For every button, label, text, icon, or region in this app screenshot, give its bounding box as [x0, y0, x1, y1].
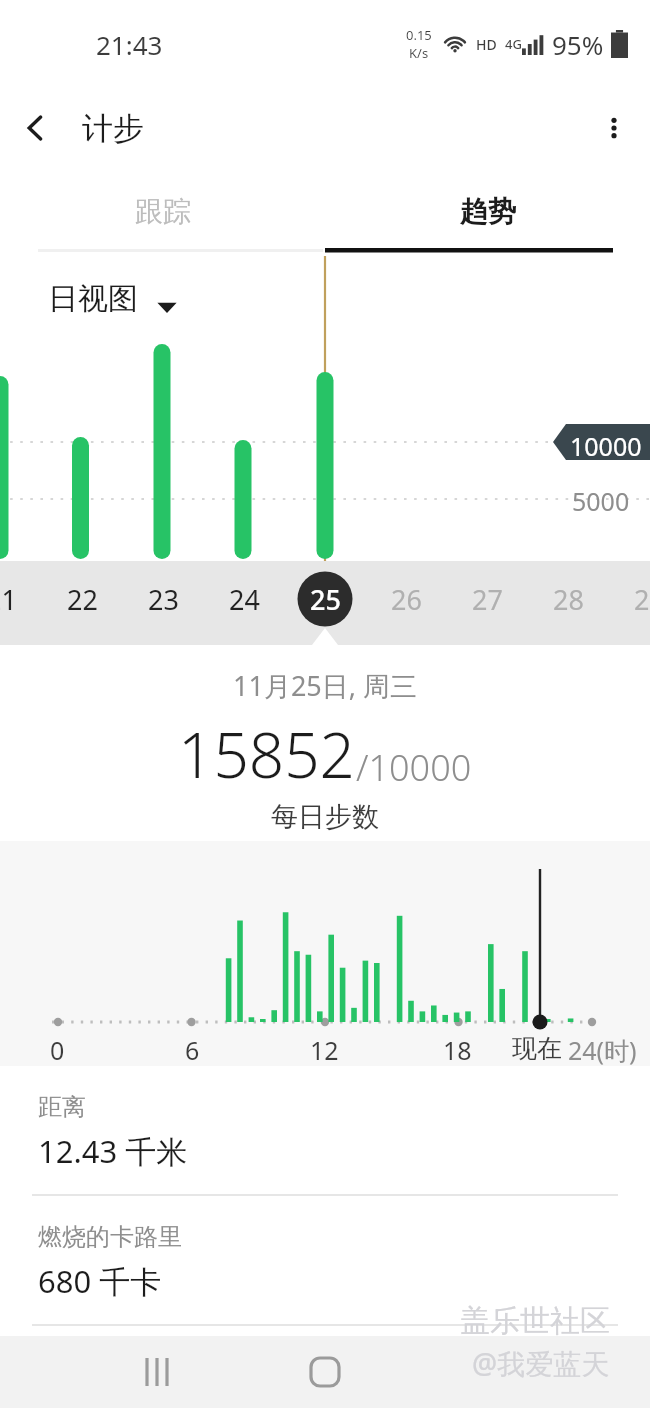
staticText: 现在: [512, 1033, 562, 1064]
staticText: 25: [310, 581, 341, 618]
staticText: 跟踪: [135, 194, 191, 229]
button[interactable]: 距离: [0, 1066, 650, 1194]
staticText: 680 千卡: [38, 1260, 162, 1302]
staticText: 28: [553, 581, 584, 618]
button[interactable]: 25: [285, 561, 365, 645]
button[interactable]: Home: [285, 1336, 365, 1408]
button[interactable]: 21: [0, 561, 41, 645]
staticText: 18: [443, 1033, 472, 1066]
staticText: 29: [634, 581, 650, 618]
button[interactable]: Recents: [118, 1336, 198, 1408]
staticText: 4G: [505, 35, 522, 53]
staticText: 15852: [178, 712, 356, 796]
staticText: 5000: [572, 484, 630, 518]
staticText: 11月25日, 周三: [233, 667, 418, 704]
staticText: 0.15: [406, 26, 432, 44]
staticText: 趋势: [460, 194, 516, 229]
staticText: 日视图: [48, 280, 138, 318]
button[interactable]: 22: [42, 561, 122, 645]
staticText: 24: [229, 581, 260, 618]
staticText: 22: [67, 581, 98, 618]
button[interactable]: 趋势: [325, 168, 650, 254]
button[interactable]: 26: [366, 561, 446, 645]
button[interactable]: 28: [528, 561, 608, 645]
staticText: 24(时): [568, 1033, 637, 1066]
staticText: 6: [185, 1033, 200, 1066]
button[interactable]: 23: [123, 561, 203, 645]
staticText: 95%: [552, 27, 604, 62]
button[interactable]: 29: [609, 561, 650, 645]
staticText: 23: [148, 581, 179, 618]
staticText: /10000: [356, 743, 472, 792]
button[interactable]: 燃烧的卡路里: [0, 1196, 650, 1324]
staticText: 每日步数: [271, 800, 379, 834]
button[interactable]: Back: [0, 92, 72, 164]
staticText: 26: [391, 581, 422, 618]
staticText: 10000: [570, 429, 642, 463]
staticText: HD: [476, 35, 497, 54]
button[interactable]: More options: [578, 92, 650, 164]
staticText: 27: [472, 581, 503, 618]
staticText: 21: [0, 581, 17, 618]
staticText: 12.43 千米: [38, 1130, 188, 1172]
staticText: 0: [50, 1033, 65, 1066]
staticText: 计步: [82, 109, 144, 148]
button[interactable]: 跟踪: [0, 168, 325, 254]
button[interactable]: 27: [447, 561, 527, 645]
staticText: 盖乐世社区: [460, 1302, 610, 1340]
staticText: 距离: [38, 1092, 86, 1122]
button[interactable]: 24: [204, 561, 284, 645]
staticText: 12: [310, 1033, 339, 1066]
staticText: 21:43: [96, 27, 163, 62]
button[interactable]: Change view: [152, 292, 182, 322]
staticText: K/s: [409, 44, 429, 62]
staticText: 燃烧的卡路里: [38, 1222, 182, 1252]
staticText: @我爱蓝天: [472, 1344, 610, 1382]
